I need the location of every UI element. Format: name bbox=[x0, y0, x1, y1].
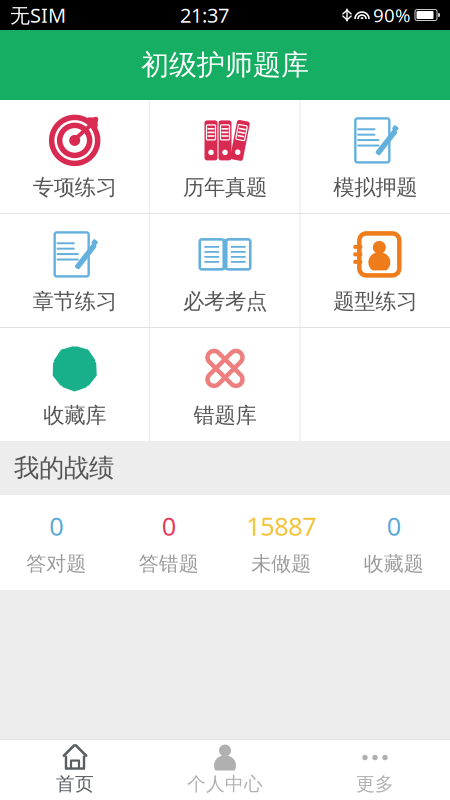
button[interactable]: 个人中心 bbox=[150, 740, 300, 800]
button[interactable]: 题型练习 bbox=[301, 214, 450, 327]
staticText: 更多 bbox=[356, 772, 394, 795]
staticText: 历年真题 bbox=[183, 174, 267, 201]
staticText: 0 bbox=[162, 509, 176, 543]
button[interactable]: 历年真题 bbox=[150, 100, 300, 213]
staticText: 答错题 bbox=[139, 552, 199, 576]
staticText: 未做题 bbox=[251, 552, 311, 576]
staticText: 初级护师题库 bbox=[141, 48, 309, 82]
button[interactable]: 必考考点 bbox=[150, 214, 300, 327]
button[interactable]: 章节练习 bbox=[0, 214, 149, 327]
staticText: 15887 bbox=[246, 509, 316, 543]
button[interactable]: 首页 bbox=[0, 740, 150, 800]
staticText: 答对题 bbox=[26, 552, 86, 576]
staticText: 专项练习 bbox=[33, 174, 117, 201]
staticText: 错题库 bbox=[193, 402, 256, 429]
staticText: 必考考点 bbox=[183, 288, 267, 315]
staticText: 21:37 bbox=[180, 2, 229, 28]
button[interactable]: 收藏库 bbox=[0, 328, 149, 441]
button[interactable]: 专项练习 bbox=[0, 100, 149, 213]
button[interactable]: 更多 bbox=[300, 740, 450, 800]
button[interactable]: 错题库 bbox=[150, 328, 300, 441]
staticText: 90% bbox=[373, 3, 411, 27]
staticText: 无SIM bbox=[10, 2, 66, 28]
staticText: 首页 bbox=[56, 772, 94, 795]
staticText: 0 bbox=[387, 509, 401, 543]
staticText: 题型练习 bbox=[333, 288, 417, 315]
staticText: 0 bbox=[49, 509, 63, 543]
staticText: 收藏库 bbox=[43, 402, 106, 429]
staticText: 收藏题 bbox=[364, 552, 424, 576]
staticText: 个人中心 bbox=[187, 772, 263, 795]
staticText: 我的战绩 bbox=[14, 452, 114, 483]
staticText: 章节练习 bbox=[33, 288, 117, 315]
staticText: 模拟押题 bbox=[333, 174, 417, 201]
button[interactable]: 模拟押题 bbox=[301, 100, 450, 213]
